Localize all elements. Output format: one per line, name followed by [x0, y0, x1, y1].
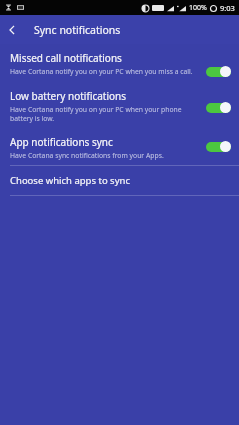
- button[interactable]: Low battery notifications: [0, 82, 239, 128]
- staticText: Choose which apps to sync: [10, 174, 130, 187]
- button[interactable]: Toggle setting: [206, 141, 231, 152]
- staticText: App notifications sync: [10, 135, 113, 149]
- staticText: Sync notifications: [34, 23, 121, 37]
- button[interactable]: Missed call notifications: [0, 44, 239, 82]
- staticText: Missed call notifications: [10, 51, 122, 65]
- staticText: 100%: [189, 3, 207, 13]
- staticText: 9:03: [220, 3, 235, 13]
- staticText: Have Cortana notify you on your PC when …: [10, 67, 200, 76]
- staticText: Have Cortana sync notifications from you…: [10, 151, 200, 160]
- button[interactable]: Choose which apps to sync: [0, 166, 239, 195]
- button[interactable]: Back: [0, 18, 24, 42]
- button[interactable]: Toggle setting: [206, 66, 231, 77]
- button[interactable]: App notifications sync: [0, 128, 239, 165]
- button[interactable]: Toggle setting: [206, 102, 231, 113]
- staticText: Low battery notifications: [10, 89, 127, 103]
- staticText: Have Cortana notify you on your PC when …: [10, 105, 200, 123]
